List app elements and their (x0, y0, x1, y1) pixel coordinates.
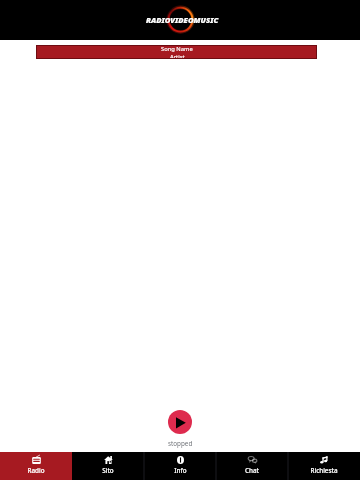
staticText: stopped (168, 439, 193, 448)
button[interactable]: Info (144, 452, 216, 480)
staticText: RADIOVIDEOMUSIC (146, 15, 219, 25)
staticText: Song Name (161, 45, 193, 53)
button[interactable]: Radio (0, 452, 72, 480)
button[interactable]: Chat (216, 452, 288, 480)
staticText: Sito (102, 466, 114, 475)
staticText: Radio (27, 466, 45, 475)
button[interactable]: Sito (72, 452, 144, 480)
staticText: Chat (245, 466, 259, 475)
button[interactable]: Play (168, 410, 192, 434)
button[interactable]: Richiesta (288, 452, 360, 480)
button[interactable]: Song Name (36, 45, 317, 59)
staticText: Richiesta (310, 466, 338, 475)
staticText: Info (174, 466, 187, 475)
staticText: Artist (170, 53, 185, 59)
